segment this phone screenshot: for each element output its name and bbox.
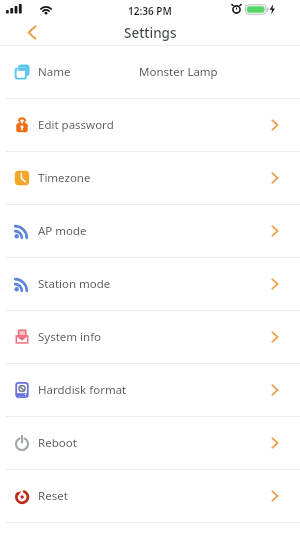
staticText: Harddisk format — [38, 382, 127, 398]
staticText: Monster Lamp — [139, 64, 218, 80]
button[interactable]: Reboot — [0, 417, 300, 470]
button[interactable] — [18, 20, 46, 45]
staticText: Station mode — [38, 276, 111, 292]
button[interactable]: AP mode — [0, 205, 300, 258]
staticText: Settings — [124, 24, 177, 42]
button[interactable]: System info — [0, 311, 300, 364]
staticText: Timezone — [38, 170, 91, 186]
staticText: Edit password — [38, 117, 114, 133]
button[interactable]: Edit password — [0, 99, 300, 152]
button[interactable]: Station mode — [0, 258, 300, 311]
staticText: AP mode — [38, 223, 87, 239]
staticText: Name — [38, 64, 71, 80]
button[interactable]: Reset — [0, 470, 300, 523]
button[interactable]: Harddisk format — [0, 364, 300, 417]
button[interactable]: Timezone — [0, 152, 300, 205]
staticText: Reset — [38, 488, 68, 504]
staticText: System info — [38, 329, 102, 345]
staticText: 12:36 PM — [128, 4, 172, 18]
button[interactable]: Name — [0, 46, 300, 99]
staticText: Reboot — [38, 435, 77, 451]
